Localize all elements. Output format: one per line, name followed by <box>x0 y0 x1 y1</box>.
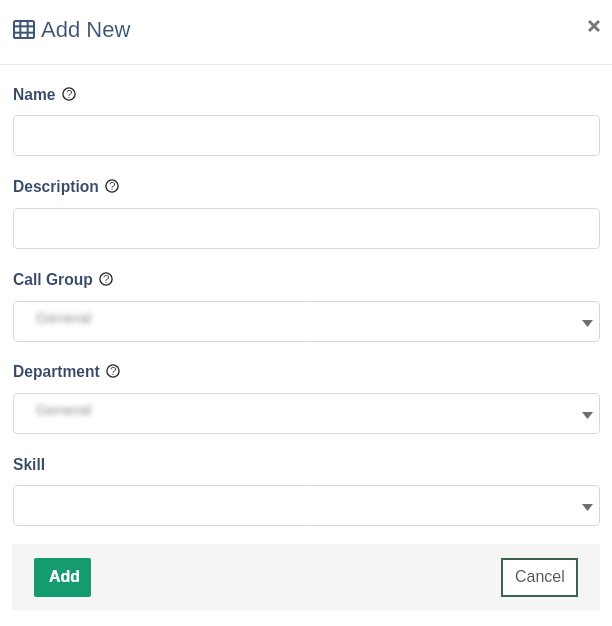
button[interactable]: General <box>13 301 600 342</box>
button[interactable]: Help: Call Group <box>99 272 113 286</box>
button[interactable]: Close <box>581 14 605 38</box>
staticText: Skill <box>13 456 46 473</box>
button[interactable]: Help: Department <box>106 364 120 378</box>
staticText: Department <box>13 363 100 380</box>
staticText: Name <box>13 86 56 103</box>
staticText: General <box>36 309 92 326</box>
staticText: General <box>36 401 92 418</box>
staticText: ? <box>109 180 116 193</box>
staticText: Description <box>13 178 99 195</box>
staticText: Call Group <box>13 271 93 288</box>
staticText: Add <box>49 568 81 586</box>
staticText: ? <box>103 273 110 286</box>
staticText: ? <box>66 88 73 101</box>
button[interactable]: Help: Name <box>62 87 76 101</box>
staticText: Cancel <box>515 568 565 586</box>
staticText: ? <box>110 365 117 378</box>
button[interactable] <box>13 208 600 249</box>
button[interactable] <box>13 485 600 526</box>
button[interactable] <box>13 115 600 156</box>
button[interactable]: Add <box>34 558 91 597</box>
staticText: Add New <box>41 17 131 42</box>
button[interactable]: Cancel <box>501 558 578 597</box>
button[interactable]: General <box>13 393 600 434</box>
button[interactable]: Help: Description <box>105 179 119 193</box>
